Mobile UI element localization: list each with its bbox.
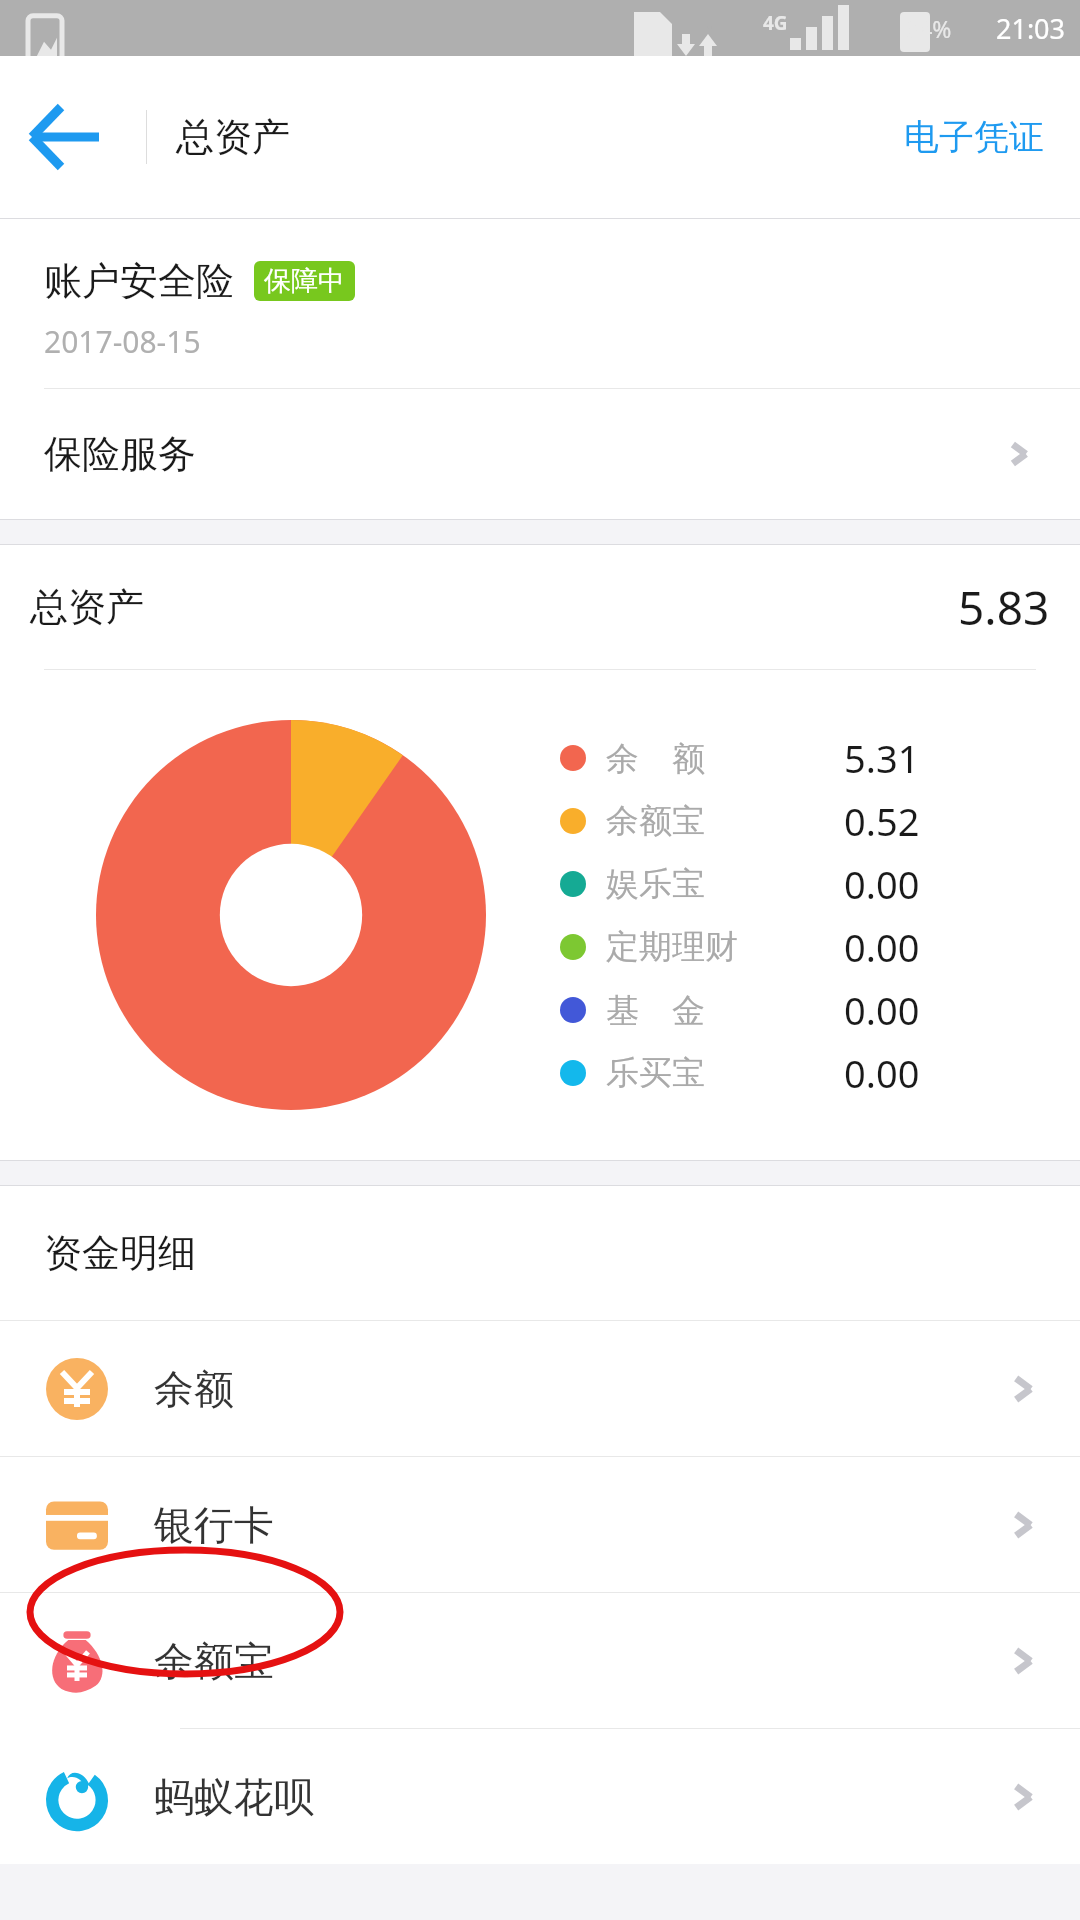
button[interactable]: 余额宝 bbox=[0, 1593, 1080, 1728]
staticText: 1 bbox=[706, 14, 719, 44]
staticText: 保险服务 bbox=[44, 430, 196, 478]
staticText: 0.00 bbox=[844, 984, 920, 1036]
staticText: 4G bbox=[763, 10, 788, 36]
staticText: 蚂蚁花呗 bbox=[154, 1772, 314, 1822]
staticText: 84% bbox=[906, 13, 952, 44]
staticText: 娱乐宝 bbox=[606, 863, 705, 905]
button[interactable]: 电子凭证 bbox=[868, 91, 1080, 183]
staticText: 5.31 bbox=[844, 732, 920, 784]
button[interactable]: 账户安全险 bbox=[0, 219, 1080, 388]
button[interactable]: Back bbox=[20, 91, 112, 183]
staticText: 0.00 bbox=[844, 921, 920, 973]
staticText: 银行卡 bbox=[154, 1500, 274, 1550]
button[interactable]: 银行卡 bbox=[0, 1457, 1080, 1592]
button[interactable]: 余额 bbox=[0, 1321, 1080, 1456]
staticText: 电子凭证 bbox=[904, 115, 1044, 159]
staticText: 0.52 bbox=[844, 795, 920, 847]
staticText: 乐买宝 bbox=[606, 1052, 705, 1094]
staticText: 余额宝 bbox=[606, 800, 705, 842]
staticText: 余 额 bbox=[606, 735, 705, 780]
staticText: 基 金 bbox=[606, 987, 705, 1032]
staticText: 2017-08-15 bbox=[44, 321, 201, 362]
staticText: 5.83 bbox=[958, 576, 1050, 639]
staticText: 0.00 bbox=[844, 1047, 920, 1099]
staticText: 总资产 bbox=[30, 583, 144, 631]
button[interactable]: 保险服务 bbox=[0, 389, 1080, 519]
staticText: 余额宝 bbox=[154, 1636, 274, 1686]
staticText: 总资产 bbox=[176, 113, 290, 161]
staticText: 资金明细 bbox=[44, 1229, 196, 1277]
staticText: 定期理财 bbox=[606, 926, 738, 968]
staticText: 保障中 bbox=[264, 264, 345, 298]
button[interactable]: 蚂蚁花呗 bbox=[0, 1729, 1080, 1864]
staticText: 账户安全险 bbox=[44, 257, 234, 305]
staticText: 0.00 bbox=[844, 858, 920, 910]
staticText: 余额 bbox=[154, 1364, 234, 1414]
staticText: 21:03 bbox=[996, 10, 1066, 47]
